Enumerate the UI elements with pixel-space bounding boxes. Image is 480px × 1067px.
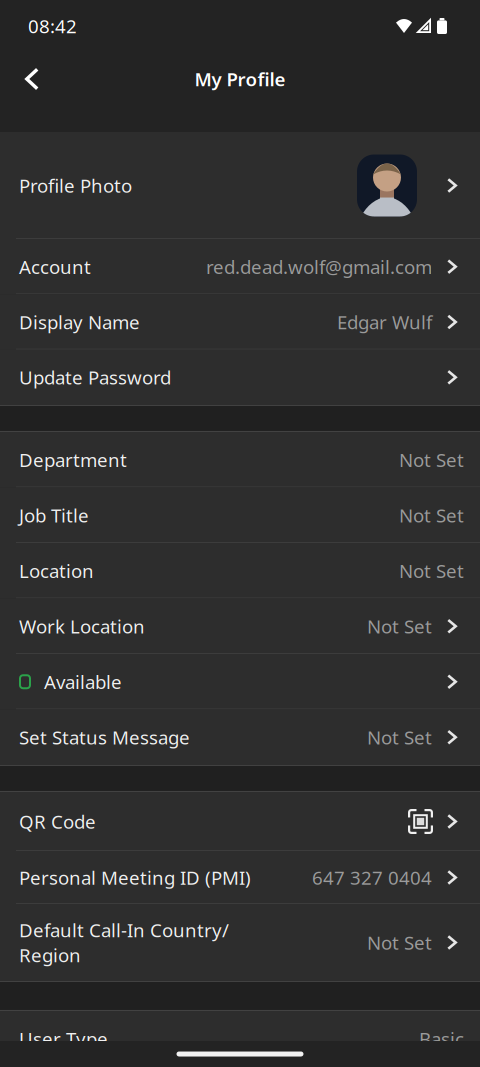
- button[interactable]: Default Call-In Country/ Region: [0, 904, 480, 981]
- button[interactable]: Personal Meeting ID (PMI): [0, 851, 480, 904]
- button[interactable]: Job Title: [0, 487, 480, 543]
- staticText: Personal Meeting ID (PMI): [19, 865, 251, 890]
- staticText: Work Location: [19, 614, 145, 639]
- button[interactable]: Department: [0, 432, 480, 487]
- staticText: Available: [44, 669, 122, 694]
- staticText: Set Status Message: [19, 725, 190, 750]
- staticText: Not Set: [367, 614, 432, 639]
- staticText: User Type: [19, 1026, 108, 1051]
- button[interactable]: Back: [0, 52, 55, 106]
- staticText: My Profile: [194, 67, 285, 91]
- button[interactable]: Work Location: [0, 598, 480, 654]
- staticText: red.dead.wolf@gmail.com: [206, 254, 432, 279]
- staticText: Not Set: [367, 930, 432, 955]
- staticText: Edgar Wulf: [337, 310, 432, 334]
- button[interactable]: Available: [0, 654, 480, 709]
- button[interactable]: Update Password: [0, 350, 480, 405]
- staticText: Not Set: [399, 558, 464, 583]
- button[interactable]: Set Status Message: [0, 709, 480, 765]
- button[interactable]: Location: [0, 543, 480, 598]
- button[interactable]: Profile Photo: [0, 132, 480, 239]
- button[interactable]: User Type: [0, 1011, 480, 1066]
- staticText: Location: [19, 558, 94, 583]
- staticText: Profile Photo: [19, 173, 132, 198]
- staticText: Not Set: [399, 447, 464, 472]
- staticText: Update Password: [19, 365, 171, 390]
- staticText: Display Name: [19, 310, 140, 334]
- button[interactable]: QR Code: [0, 792, 480, 851]
- staticText: Not Set: [399, 503, 464, 528]
- staticText: Not Set: [367, 725, 432, 750]
- button[interactable]: Account: [0, 239, 480, 294]
- staticText: 08:42: [28, 14, 77, 38]
- staticText: Department: [19, 447, 127, 472]
- staticText: QR Code: [19, 809, 96, 834]
- button[interactable]: Display Name: [0, 294, 480, 350]
- staticText: 647 327 0404: [312, 865, 432, 890]
- staticText: Basic: [419, 1026, 464, 1051]
- staticText: Default Call-In Country/ Region: [19, 918, 229, 967]
- staticText: Job Title: [19, 503, 89, 528]
- staticText: Account: [19, 254, 91, 279]
